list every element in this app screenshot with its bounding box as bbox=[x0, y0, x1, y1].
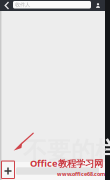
staticText: Office教程学习网 bbox=[30, 157, 103, 169]
button[interactable]: Contacts bbox=[91, 0, 105, 11]
button[interactable]: Back bbox=[0, 0, 13, 11]
staticText: www.office68.com bbox=[57, 170, 105, 177]
staticText: 收件人 bbox=[15, 1, 30, 8]
button[interactable]: Add attachment bbox=[0, 162, 16, 180]
staticText: 不要的样 bbox=[23, 136, 110, 165]
